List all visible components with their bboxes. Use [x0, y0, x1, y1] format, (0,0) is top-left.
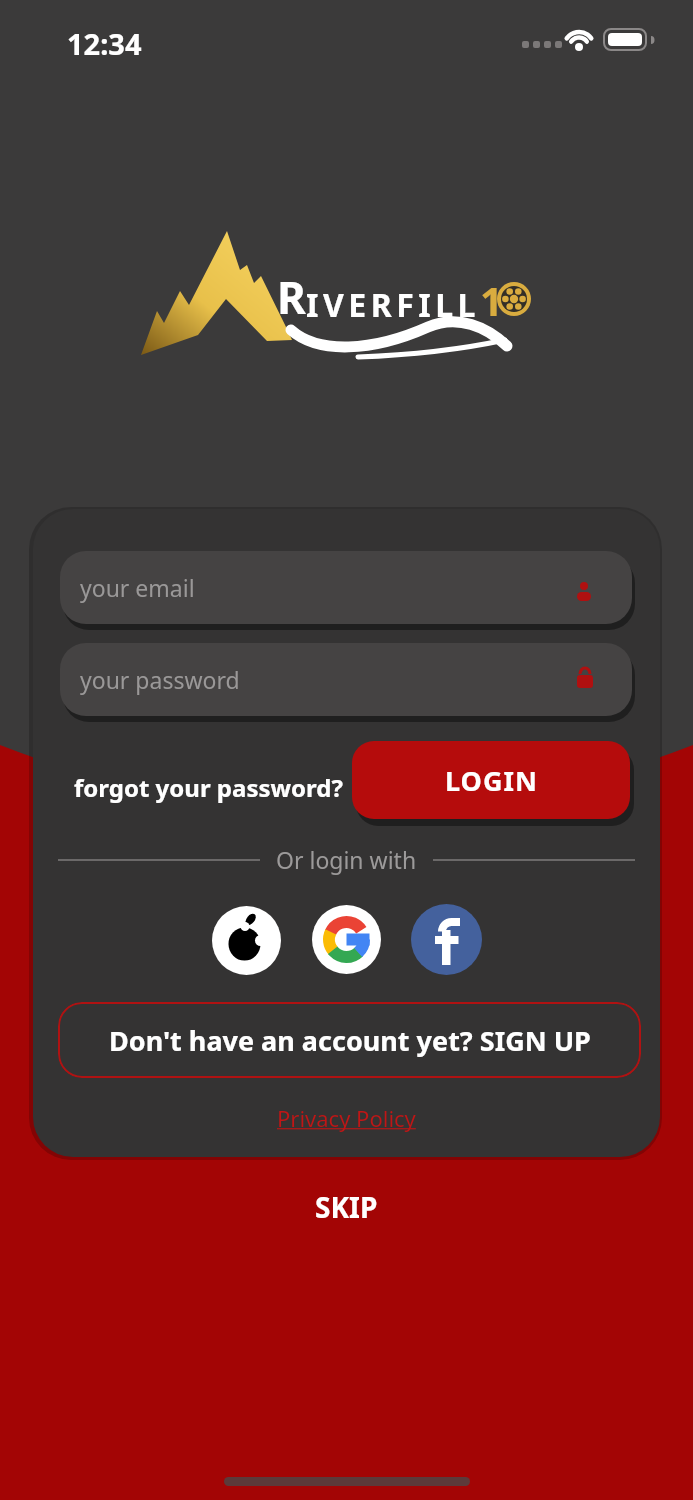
button[interactable] [312, 905, 381, 974]
staticText: Don't have an account yet? SIGN UP [109, 1022, 591, 1059]
button[interactable]: LOGIN [352, 741, 630, 819]
button[interactable]: Don't have an account yet? SIGN UP [58, 1002, 641, 1078]
button[interactable]: forgot your password? [74, 771, 343, 804]
staticText: LOGIN [445, 762, 538, 799]
staticText: Or login with [276, 844, 417, 875]
staticText: IVERFILL [306, 283, 480, 327]
button[interactable]: Privacy Policy [277, 1103, 416, 1133]
button[interactable] [411, 904, 482, 975]
staticText: your password [80, 664, 240, 695]
staticText: 1 [480, 273, 503, 327]
staticText: R [277, 267, 306, 327]
staticText: your email [80, 572, 195, 603]
button[interactable]: your email [60, 551, 632, 624]
button[interactable]: SKIP [315, 1188, 378, 1226]
button[interactable]: your password [60, 643, 632, 716]
staticText: 12:34 [67, 24, 142, 63]
button[interactable] [212, 906, 281, 975]
